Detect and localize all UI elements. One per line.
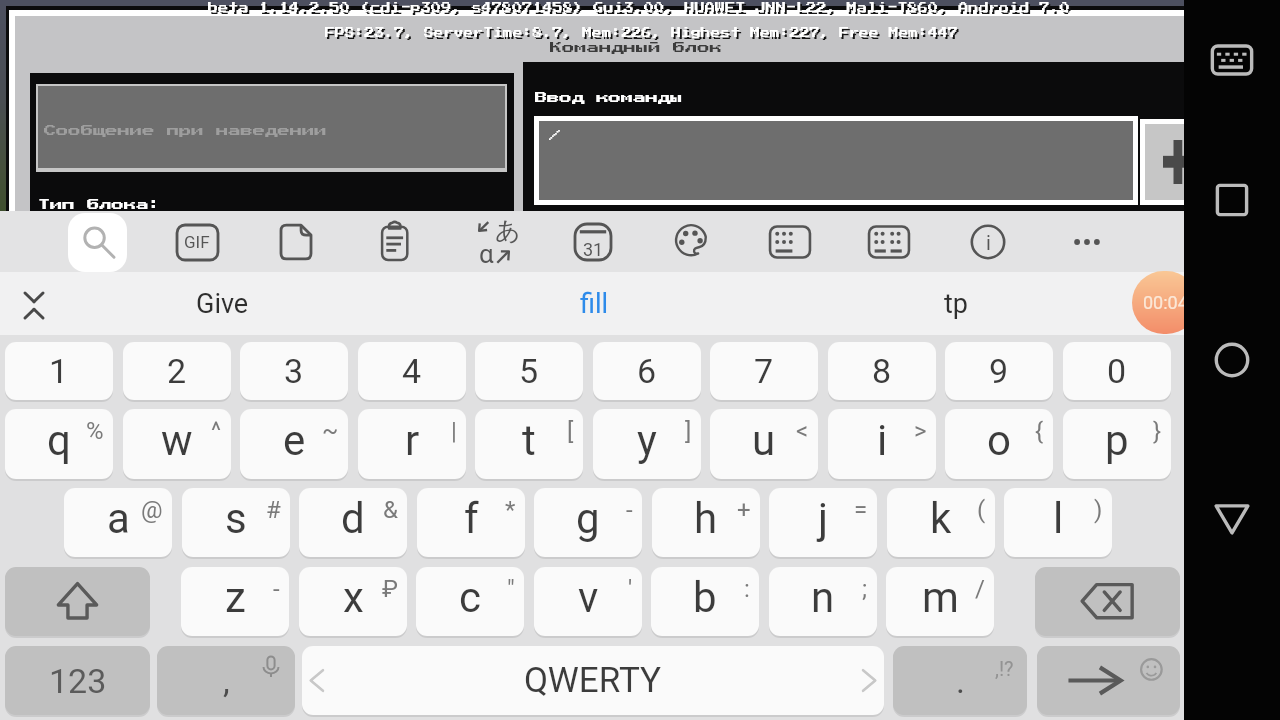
button[interactable]: Stickers (266, 212, 326, 272)
button[interactable]: k (887, 488, 995, 557)
staticText: - (626, 496, 633, 524)
button[interactable]: 5 (475, 342, 583, 400)
staticText: ; (862, 575, 868, 603)
button[interactable]: 1 (5, 342, 113, 400)
button[interactable]: Recent apps (1202, 170, 1262, 230)
staticText: GIF (184, 232, 210, 252)
button[interactable]: o (945, 409, 1053, 479)
staticText: ɑ (479, 239, 495, 269)
button[interactable]: i (828, 409, 936, 479)
button[interactable]: 123 (5, 646, 150, 715)
staticText: ] (685, 417, 692, 445)
staticText: @ (141, 496, 163, 524)
staticText: ^ (211, 417, 222, 445)
button[interactable]: 3 (240, 342, 348, 400)
button[interactable]: s (182, 488, 290, 557)
button[interactable]: Give (82, 272, 362, 335)
staticText: w (161, 416, 193, 465)
staticText: s (225, 494, 247, 543)
staticText: 123 (49, 661, 107, 701)
button[interactable]: shift (5, 567, 150, 636)
staticText: < (796, 417, 809, 445)
staticText: q (47, 416, 71, 465)
button[interactable]: Search (68, 213, 127, 272)
button[interactable]: q (5, 409, 113, 479)
staticText: } (1153, 417, 1162, 445)
button[interactable]: w (123, 409, 231, 479)
button[interactable]: g (534, 488, 642, 557)
button[interactable]: 8 (828, 342, 936, 400)
button[interactable]: r (358, 409, 466, 479)
staticText: h (694, 494, 718, 543)
button[interactable]: Info (958, 212, 1018, 272)
button[interactable]: x (299, 567, 407, 636)
button[interactable]: j (769, 488, 877, 557)
button[interactable]: More (1057, 212, 1117, 272)
button[interactable]: n (769, 567, 877, 636)
button[interactable]: u (710, 409, 818, 479)
button[interactable]: e (240, 409, 348, 479)
staticText: 6 (637, 351, 657, 391)
staticText: z (225, 573, 246, 622)
button[interactable]: 7 (710, 342, 818, 400)
staticText: % (86, 417, 104, 445)
staticText: beta 1.14.2.50 (cdi-p309, s478071458) Gu… (210, 5, 1072, 15)
button[interactable]: Split keyboard (859, 212, 919, 272)
staticText: / (975, 575, 985, 603)
staticText: t (522, 416, 536, 465)
button[interactable]: fill (454, 272, 734, 335)
button[interactable]: Translate (464, 212, 524, 272)
button[interactable]: Back (1202, 490, 1262, 550)
button[interactable]: p (1063, 409, 1171, 479)
button[interactable]: Expand suggestions (0, 272, 68, 335)
button[interactable]: Theme (662, 212, 722, 272)
button[interactable]: Recording timer (1132, 271, 1198, 334)
button[interactable]: 4 (358, 342, 466, 400)
staticText: ₽ (382, 575, 398, 603)
staticText: 0 (1107, 351, 1127, 391)
button[interactable]: 2 (123, 342, 231, 400)
staticText: Тип блока: (38, 199, 161, 211)
staticText: f (464, 494, 479, 543)
button[interactable]: Home (1202, 330, 1262, 390)
staticText: 31 (583, 239, 604, 260)
button[interactable]: enter (1037, 646, 1180, 715)
staticText: tp (944, 288, 968, 320)
button[interactable]: . (893, 646, 1027, 715)
button[interactable]: l (1004, 488, 1112, 557)
staticText: . (956, 661, 965, 701)
button[interactable]: 6 (593, 342, 701, 400)
staticText: n (811, 573, 835, 622)
button[interactable]: Clipboard (365, 212, 425, 272)
button[interactable]: f (417, 488, 525, 557)
button[interactable]: b (651, 567, 759, 636)
button[interactable]: 0 (1063, 342, 1171, 400)
staticText: j (818, 494, 829, 543)
staticText: FPS:23.7, ServerTime:8.7, Mem:226, Highe… (327, 30, 960, 40)
button[interactable]: y (593, 409, 701, 479)
button[interactable]: d (299, 488, 407, 557)
staticText: g (576, 494, 600, 543)
button[interactable]: v (534, 567, 642, 636)
button[interactable]: QWERTY (302, 646, 884, 715)
button[interactable]: m (886, 567, 994, 636)
staticText: | (451, 417, 457, 445)
staticText: beta 1.14.2.50 (cdi-p309, s478071458) Gu… (208, 3, 1070, 13)
button[interactable]: 9 (945, 342, 1053, 400)
button[interactable]: Calendar (563, 212, 623, 272)
button[interactable]: One handed mode (760, 212, 820, 272)
button[interactable]: GIF (167, 212, 227, 272)
button[interactable]: , (157, 646, 295, 715)
staticText: / (549, 130, 562, 142)
button[interactable]: t (475, 409, 583, 479)
button[interactable]: a (64, 488, 172, 557)
button[interactable]: h (652, 488, 760, 557)
staticText: e (283, 416, 306, 465)
button[interactable]: Show keyboard (1202, 30, 1262, 90)
button[interactable]: tp (816, 272, 1096, 335)
button[interactable]: c (416, 567, 524, 636)
staticText: ' (628, 575, 633, 603)
button[interactable]: back (1035, 567, 1180, 636)
button[interactable]: z (181, 567, 289, 636)
staticText: # (266, 496, 281, 524)
